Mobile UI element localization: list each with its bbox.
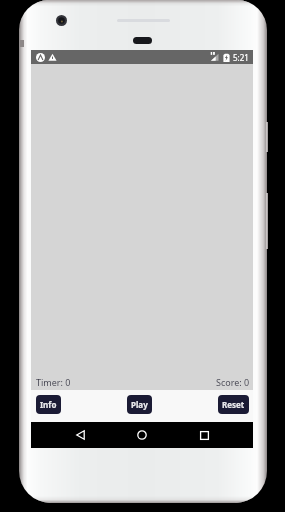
staticText: 5:21 <box>233 52 249 63</box>
button[interactable]: Back <box>49 422 111 448</box>
button[interactable]: Reset <box>218 395 249 414</box>
button[interactable]: Recent apps <box>173 422 235 448</box>
staticText: Info <box>40 399 57 410</box>
button[interactable]: Info <box>36 395 61 414</box>
staticText: Score: 0 <box>216 376 250 388</box>
button[interactable]: Play <box>127 395 152 414</box>
staticText: Reset <box>222 399 245 410</box>
button[interactable]: Home <box>111 422 173 448</box>
staticText: Play <box>131 399 148 410</box>
staticText: Timer: 0 <box>36 376 71 388</box>
